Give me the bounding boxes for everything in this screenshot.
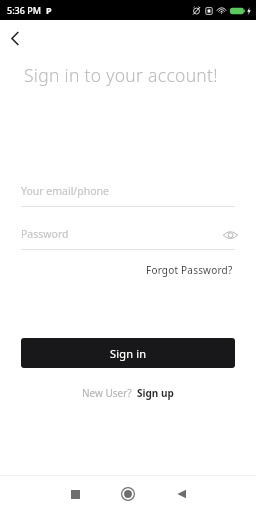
staticText: P <box>46 4 52 16</box>
staticText: Password <box>21 227 69 241</box>
button[interactable]: Sign up <box>136 383 175 403</box>
button[interactable]: Back <box>163 476 199 512</box>
button[interactable]: Back <box>2 25 28 51</box>
button[interactable]: Your email/phone <box>21 184 235 207</box>
button[interactable]: Sign in <box>21 338 235 368</box>
staticText: Your email/phone <box>21 184 109 198</box>
staticText: Sign in <box>110 346 147 361</box>
staticText: 5:36 PM <box>7 4 41 16</box>
staticText: Sign in to your account! <box>24 63 218 87</box>
button[interactable]: Forgot Password? <box>144 260 235 280</box>
staticText: Forgot Password? <box>146 263 233 277</box>
button[interactable]: Recents <box>57 476 93 512</box>
button[interactable]: Show password <box>218 223 242 247</box>
button[interactable]: Password <box>21 227 235 250</box>
staticText: Sign up <box>137 386 174 400</box>
button[interactable]: Home <box>110 476 146 512</box>
staticText: New User? <box>82 386 132 400</box>
